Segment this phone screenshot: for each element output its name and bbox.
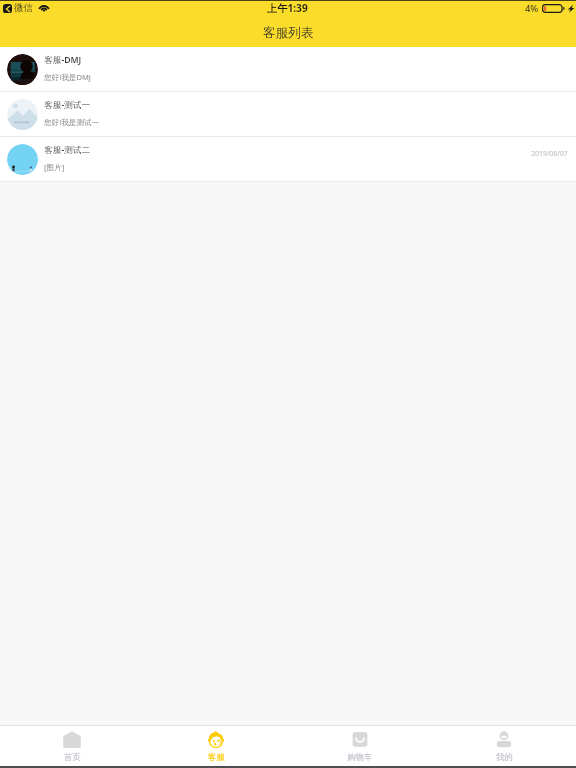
button[interactable]: 客服-测试二 bbox=[0, 137, 576, 182]
staticText: 客服-DMJ bbox=[44, 54, 82, 66]
staticText: 上午1:39 bbox=[267, 1, 308, 15]
staticText: 微信 bbox=[14, 2, 34, 14]
button[interactable]: 购物车 bbox=[288, 726, 432, 766]
staticText: 购物车 bbox=[347, 752, 373, 763]
staticText: 您好!我是DMJ bbox=[44, 72, 91, 82]
button[interactable]: 客服-测试一 bbox=[0, 92, 576, 137]
button[interactable]: 客服 bbox=[144, 726, 288, 766]
button[interactable]: 首页 bbox=[0, 726, 144, 766]
button[interactable]: 我的 bbox=[432, 726, 576, 766]
staticText: 客服 bbox=[208, 752, 225, 763]
staticText: 4% bbox=[525, 2, 539, 15]
staticText: 您好!我是测试一 bbox=[44, 117, 100, 127]
button[interactable]: 返回微信 bbox=[3, 4, 12, 13]
staticText: 首页 bbox=[64, 752, 81, 763]
staticText: 我的 bbox=[496, 752, 513, 763]
staticText: 2019/08/07 bbox=[531, 149, 568, 158]
button[interactable]: 客服-DMJ bbox=[0, 47, 576, 92]
staticText: 客服-测试一 bbox=[44, 99, 91, 111]
staticText: [图片] bbox=[44, 162, 65, 172]
staticText: 客服列表 bbox=[263, 25, 314, 41]
staticText: 客服-测试二 bbox=[44, 144, 91, 156]
